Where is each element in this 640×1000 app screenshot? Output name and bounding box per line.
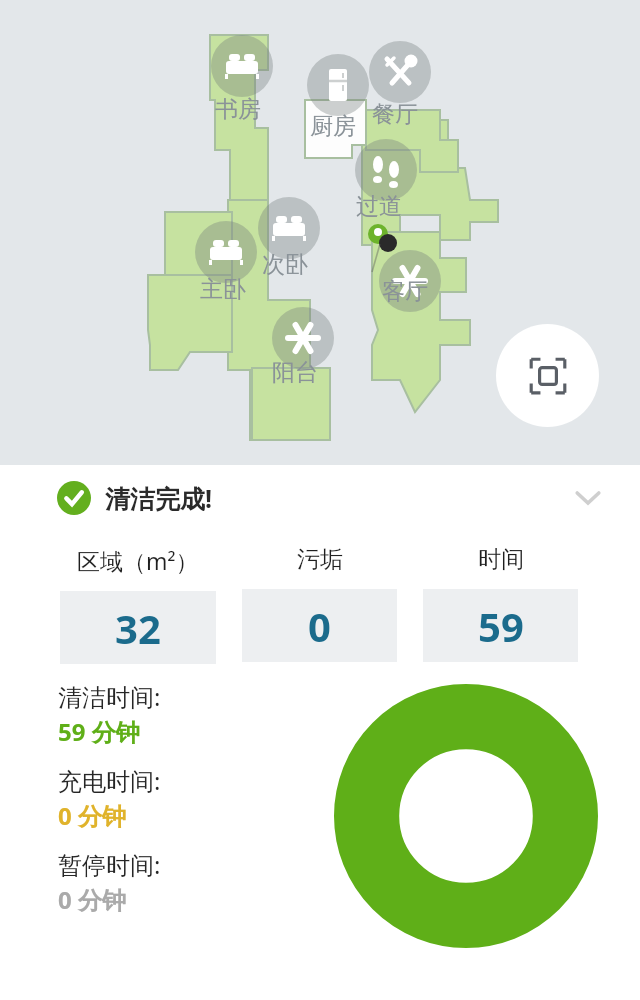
staticText: 客厅 [382,277,428,306]
staticText: 清洁完成! [105,481,213,515]
staticText: 书房 [215,95,261,124]
staticText: 0 [308,599,331,653]
staticText: 阳台 [272,358,318,387]
button[interactable]: 32 [60,591,216,664]
button[interactable]: 59 [423,589,578,662]
staticText: 59 [478,599,524,653]
staticText: 区域（m²） [77,545,199,576]
staticText: 32 [115,601,161,655]
staticText: 时间 [478,545,524,574]
button[interactable]: 清洁完成! [0,465,640,531]
button[interactable]: Collapse [566,476,610,520]
staticText: 清洁时间: [58,680,161,713]
staticText: 厨房 [310,112,356,141]
staticText: 充电时间: [58,764,161,797]
staticText: 主卧 [200,275,246,304]
staticText: 0 分钟 [58,883,126,916]
button[interactable]: Fit map to screen [496,324,599,427]
staticText: 污垢 [297,545,343,574]
button[interactable]: 0 [242,589,397,662]
staticText: 暂停时间: [58,848,161,881]
staticText: 餐厅 [372,100,418,129]
staticText: 59 分钟 [58,715,140,748]
staticText: 过道 [356,192,402,221]
staticText: 0 分钟 [58,799,126,832]
staticText: 次卧 [262,250,308,279]
